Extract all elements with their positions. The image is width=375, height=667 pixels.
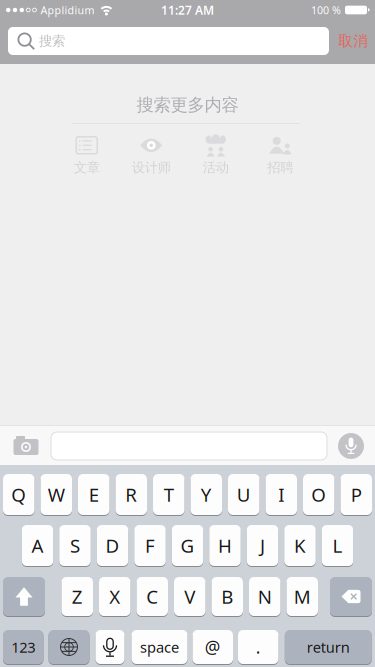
staticText: B [221,584,233,609]
staticText: K [294,533,306,558]
button[interactable]: W [40,474,72,515]
staticText: F [145,533,155,558]
staticText: W [48,482,65,507]
staticText: R [125,482,137,507]
staticText: 取消 [338,32,368,50]
staticText: 11:27 AM [161,2,214,18]
button[interactable]: @ [192,630,233,664]
button[interactable]: K [284,525,316,566]
staticText: 设计师 [132,159,171,176]
staticText: 招聘 [267,159,293,176]
staticText: 文章 [74,159,100,176]
staticText: I [278,482,284,507]
button[interactable]: Dictation [338,433,364,459]
staticText: H [218,533,232,558]
button[interactable]: T [153,474,184,515]
button[interactable]: Shift [3,577,45,616]
button[interactable]: U [228,474,259,515]
staticText: T [164,482,174,507]
button[interactable]: Dictate [95,630,124,664]
button[interactable]: Next keyboard [48,630,89,664]
button[interactable]: return [285,630,372,664]
staticText: 搜索更多内容 [136,94,238,116]
staticText: S [70,533,80,558]
staticText: V [184,584,195,609]
staticText: Q [11,482,26,507]
button[interactable]: L [322,525,353,566]
staticText: P [351,482,362,507]
button[interactable]: M [286,577,318,616]
staticText: G [180,533,194,558]
staticText: Applidium [40,3,94,17]
staticText: N [258,584,272,609]
staticText: space [140,637,179,657]
button[interactable]: 123 [3,630,43,664]
staticText: . [256,635,261,658]
staticText: C [146,584,158,609]
button[interactable]: space [131,630,187,664]
staticText: 活动 [203,159,229,176]
button[interactable]: X [99,577,130,616]
staticText: U [237,482,251,507]
button[interactable]: Z [61,577,93,616]
staticText: X [109,584,120,609]
button[interactable]: Delete [330,577,372,616]
staticText: Z [72,584,83,609]
button[interactable]: A [22,525,53,566]
button[interactable]: I [265,474,297,515]
button[interactable]: P [340,474,372,515]
button[interactable]: Camera [8,431,44,461]
staticText: D [105,533,119,558]
staticText: 123 [11,637,35,657]
button[interactable]: H [209,525,241,566]
button[interactable]: . [238,630,278,664]
button[interactable]: Y [190,474,222,515]
staticText: J [260,533,265,558]
button[interactable]: 招聘 [248,134,312,176]
button[interactable]: S [59,525,91,566]
button[interactable]: E [78,474,109,515]
button[interactable]: V [174,577,205,616]
button[interactable]: 文章 [54,134,119,176]
staticText: E [89,482,99,507]
staticText: L [332,533,342,558]
button[interactable]: 活动 [183,134,248,176]
button[interactable]: N [249,577,280,616]
staticText: M [294,584,311,609]
staticText: @ [205,635,221,658]
staticText: return [307,637,350,657]
staticText: Y [201,482,212,507]
button[interactable]: J [247,525,278,566]
staticText: O [311,482,326,507]
button[interactable]: 设计师 [119,134,183,176]
button[interactable]: C [136,577,168,616]
button[interactable]: G [172,525,203,566]
staticText: A [31,533,43,558]
staticText: 100 % [311,3,341,17]
button[interactable]: 取消 [331,27,375,55]
staticText: 搜索 [39,33,65,49]
button[interactable]: B [211,577,243,616]
button[interactable]: D [97,525,128,566]
button[interactable]: O [303,474,334,515]
button[interactable]: R [115,474,147,515]
button[interactable]: F [134,525,166,566]
button[interactable]: Q [3,474,34,515]
